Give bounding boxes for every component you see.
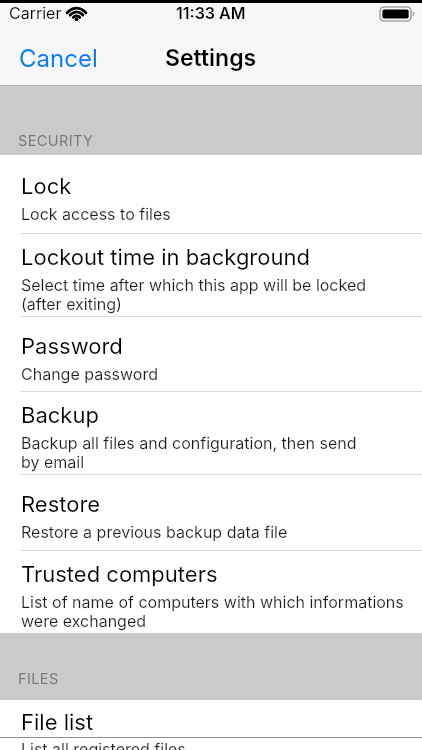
button[interactable]: Trusted computers — [0, 551, 422, 633]
staticText: Select time after which this app will be… — [21, 275, 367, 294]
staticText: Settings — [165, 44, 257, 72]
staticText: Restore — [21, 491, 101, 518]
staticText: Backup — [21, 402, 99, 429]
staticText: (after exiting) — [21, 294, 122, 313]
staticText: File list — [21, 709, 94, 736]
staticText: Lock access to files — [21, 204, 171, 223]
staticText: Trusted computers — [21, 561, 218, 588]
button[interactable]: File list — [0, 700, 422, 750]
staticText: Cancel — [19, 44, 98, 73]
staticText: 11:33 AM — [176, 3, 246, 22]
staticText: List all registered files — [21, 739, 186, 750]
button[interactable]: Password — [0, 317, 422, 391]
staticText: Lock — [21, 173, 72, 200]
button[interactable]: Lock — [0, 155, 422, 233]
staticText: Restore a previous backup data file — [21, 522, 288, 541]
staticText: by email — [21, 452, 85, 471]
staticText: FILES — [18, 670, 59, 688]
staticText: SECURITY — [18, 132, 94, 150]
staticText: Backup all files and configuration, then… — [21, 433, 357, 452]
button[interactable]: Restore — [0, 475, 422, 550]
button[interactable]: Lockout time in background — [0, 234, 422, 316]
staticText: Carrier — [9, 3, 62, 22]
staticText: Password — [21, 333, 123, 360]
staticText: List of name of computers with which inf… — [21, 592, 404, 611]
staticText: Lockout time in background — [21, 244, 310, 271]
staticText: were exchanged — [21, 611, 147, 630]
button[interactable]: Cancel — [19, 44, 98, 73]
staticText: Change password — [21, 364, 159, 383]
button[interactable]: Backup — [0, 392, 422, 474]
